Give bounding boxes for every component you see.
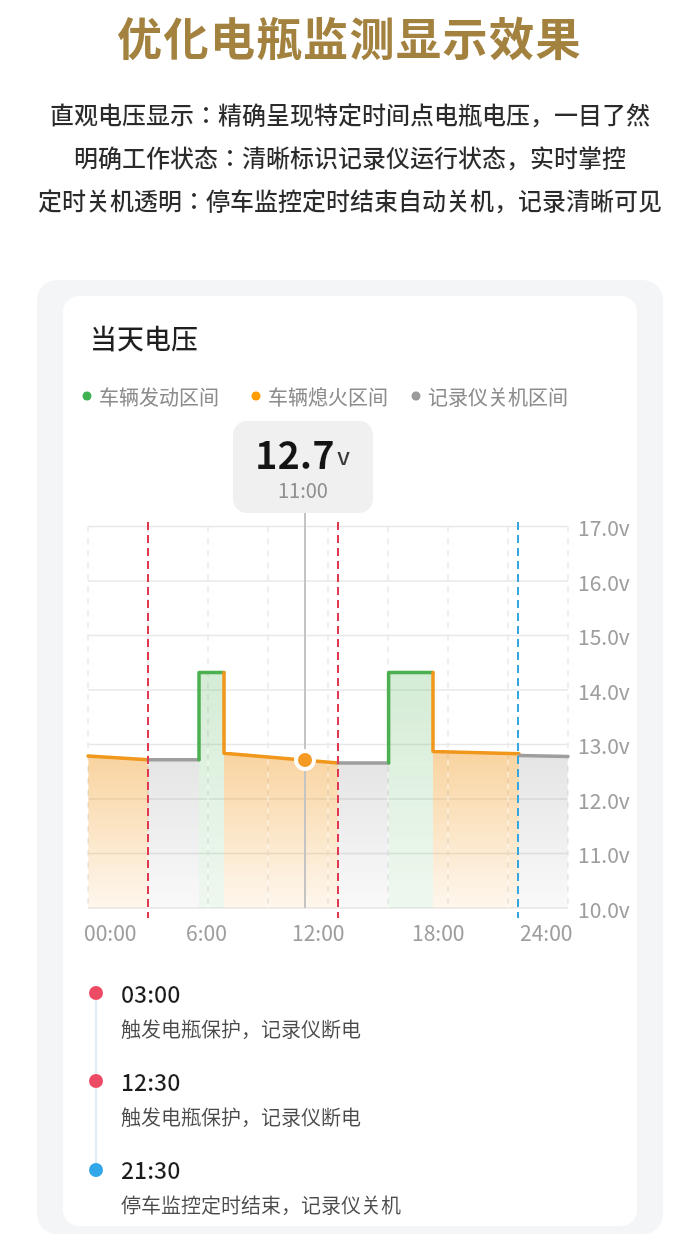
staticText: 12:30 xyxy=(121,1064,181,1097)
staticText: 21:30 xyxy=(121,1152,181,1185)
staticText: 车辆发动区间 xyxy=(99,382,219,411)
staticText: 12:00 xyxy=(292,917,345,947)
staticText: 停车监控定时结束，记录仪关机 xyxy=(121,1190,401,1219)
staticText: 定时关机透明：停车监控定时结束自动关机，记录清晰可见 xyxy=(38,182,662,217)
staticText: 10.0v xyxy=(578,894,630,924)
staticText: 03:00 xyxy=(121,976,181,1009)
staticText: 11:00 xyxy=(278,475,328,504)
button[interactable] xyxy=(63,296,637,1226)
staticText: 14.0v xyxy=(578,676,630,706)
staticText: 00:00 xyxy=(84,917,137,947)
staticText: 当天电压 xyxy=(90,318,198,357)
staticText: 16.0v xyxy=(578,567,630,597)
button[interactable]: 03:00 xyxy=(121,976,361,1043)
staticText: 车辆熄火区间 xyxy=(268,382,388,411)
staticText: 12.7 xyxy=(255,425,335,480)
staticText: 触发电瓶保护，记录仪断电 xyxy=(121,1102,361,1131)
staticText: 11.0v xyxy=(578,839,630,869)
staticText: 24:00 xyxy=(520,917,573,947)
staticText: 触发电瓶保护，记录仪断电 xyxy=(121,1014,361,1043)
staticText: 优化电瓶监测显示效果 xyxy=(117,4,583,69)
staticText: 12.0v xyxy=(578,785,630,815)
staticText: 直观电压显示：精确呈现特定时间点电瓶电压，一目了然 xyxy=(50,96,650,131)
staticText: 6:00 xyxy=(186,917,227,947)
button[interactable]: 12.7 xyxy=(233,421,373,513)
staticText: 记录仪关机区间 xyxy=(428,382,568,411)
button[interactable]: 12:30 xyxy=(121,1064,361,1131)
staticText: 13.0v xyxy=(578,730,630,760)
staticText: 15.0v xyxy=(578,621,630,651)
staticText: 18:00 xyxy=(412,917,465,947)
staticText: v xyxy=(337,437,351,472)
staticText: 明确工作状态：清晰标识记录仪运行状态，实时掌控 xyxy=(74,139,626,174)
button[interactable]: 21:30 xyxy=(121,1152,401,1219)
staticText: 17.0v xyxy=(578,512,630,542)
